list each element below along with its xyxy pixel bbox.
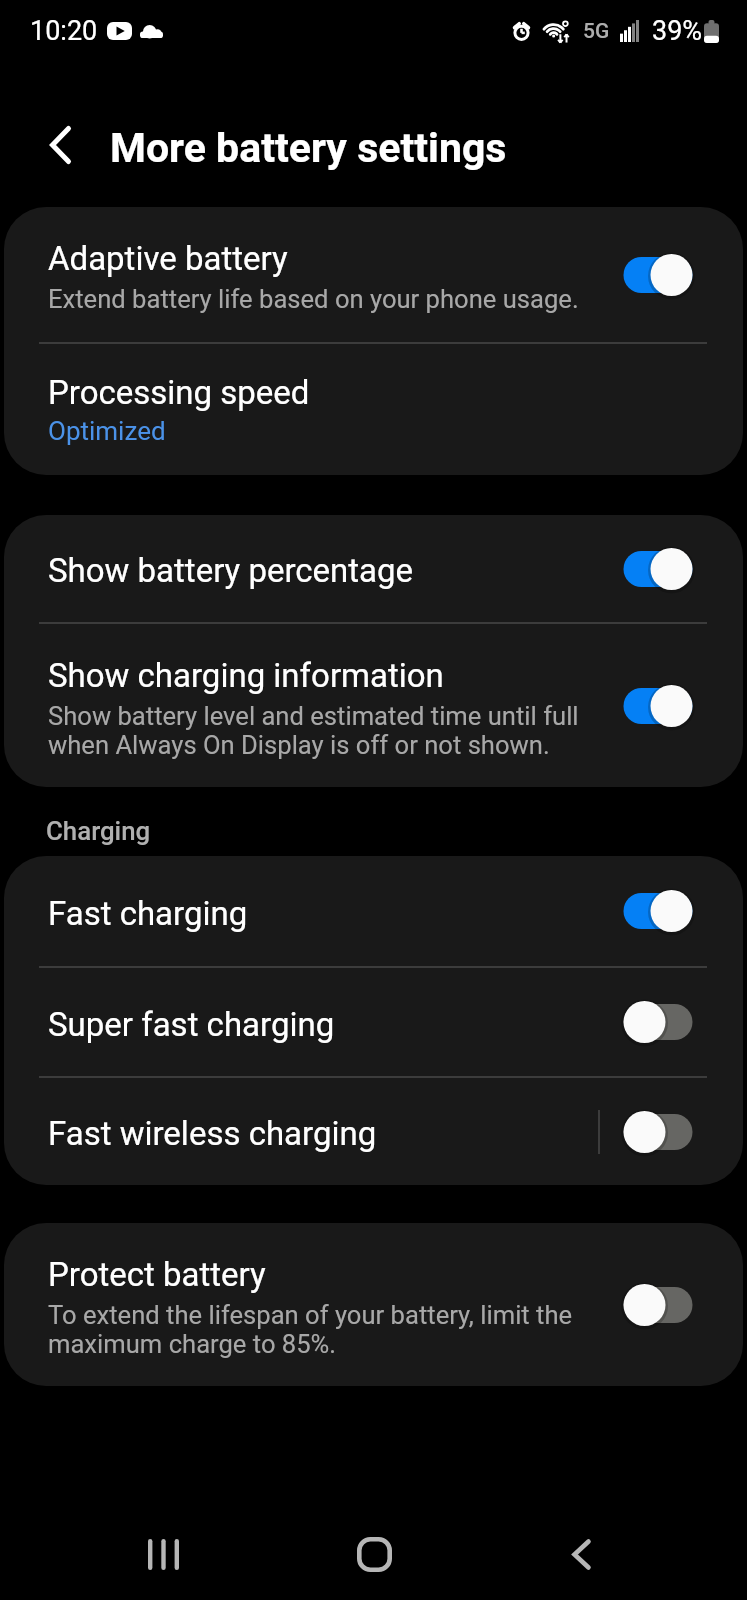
button[interactable]: Navigate up xyxy=(22,107,98,183)
staticText: Extend battery life based on your phone … xyxy=(48,284,579,314)
button[interactable]: Show charging information xyxy=(4,624,743,787)
staticText: Fast charging xyxy=(48,894,248,933)
button[interactable]: Protect battery xyxy=(4,1223,743,1386)
staticText: Show battery percentage xyxy=(48,551,414,590)
staticText: Protect battery xyxy=(48,1255,266,1294)
staticText: Charging xyxy=(46,816,151,846)
button[interactable]: Switch off xyxy=(610,1104,706,1160)
staticText: Show charging information xyxy=(48,656,444,695)
staticText: 5G xyxy=(583,19,610,44)
button[interactable]: Fast wireless charging xyxy=(4,1078,743,1185)
button[interactable]: Home xyxy=(326,1509,422,1600)
button[interactable]: Super fast charging xyxy=(4,968,743,1076)
button[interactable]: Fast charging xyxy=(4,856,743,966)
staticText: Adaptive battery xyxy=(48,239,288,278)
button[interactable]: Switch on xyxy=(610,883,706,939)
button[interactable]: Recent apps xyxy=(115,1509,211,1600)
staticText: Optimized xyxy=(48,416,166,446)
staticText: To extend the lifespan of your battery, … xyxy=(48,1300,573,1359)
button[interactable]: Switch on xyxy=(610,541,706,597)
button[interactable]: Back xyxy=(533,1509,629,1600)
button[interactable]: Show battery percentage xyxy=(4,515,743,622)
button[interactable]: Adaptive battery xyxy=(4,207,743,342)
button[interactable]: Switch off xyxy=(610,1277,706,1333)
staticText: 10:20 xyxy=(30,15,98,47)
button[interactable]: Processing speed xyxy=(4,344,743,475)
staticText: Show battery level and estimated time un… xyxy=(48,701,579,760)
staticText: Fast wireless charging xyxy=(48,1114,377,1153)
staticText: More battery settings xyxy=(110,124,507,172)
staticText: Super fast charging xyxy=(48,1005,335,1044)
button[interactable]: Switch on xyxy=(610,247,706,303)
button[interactable]: Switch off xyxy=(610,994,706,1050)
staticText: 39% xyxy=(652,15,703,47)
button[interactable]: Switch on xyxy=(610,678,706,734)
staticText: Processing speed xyxy=(48,373,310,412)
